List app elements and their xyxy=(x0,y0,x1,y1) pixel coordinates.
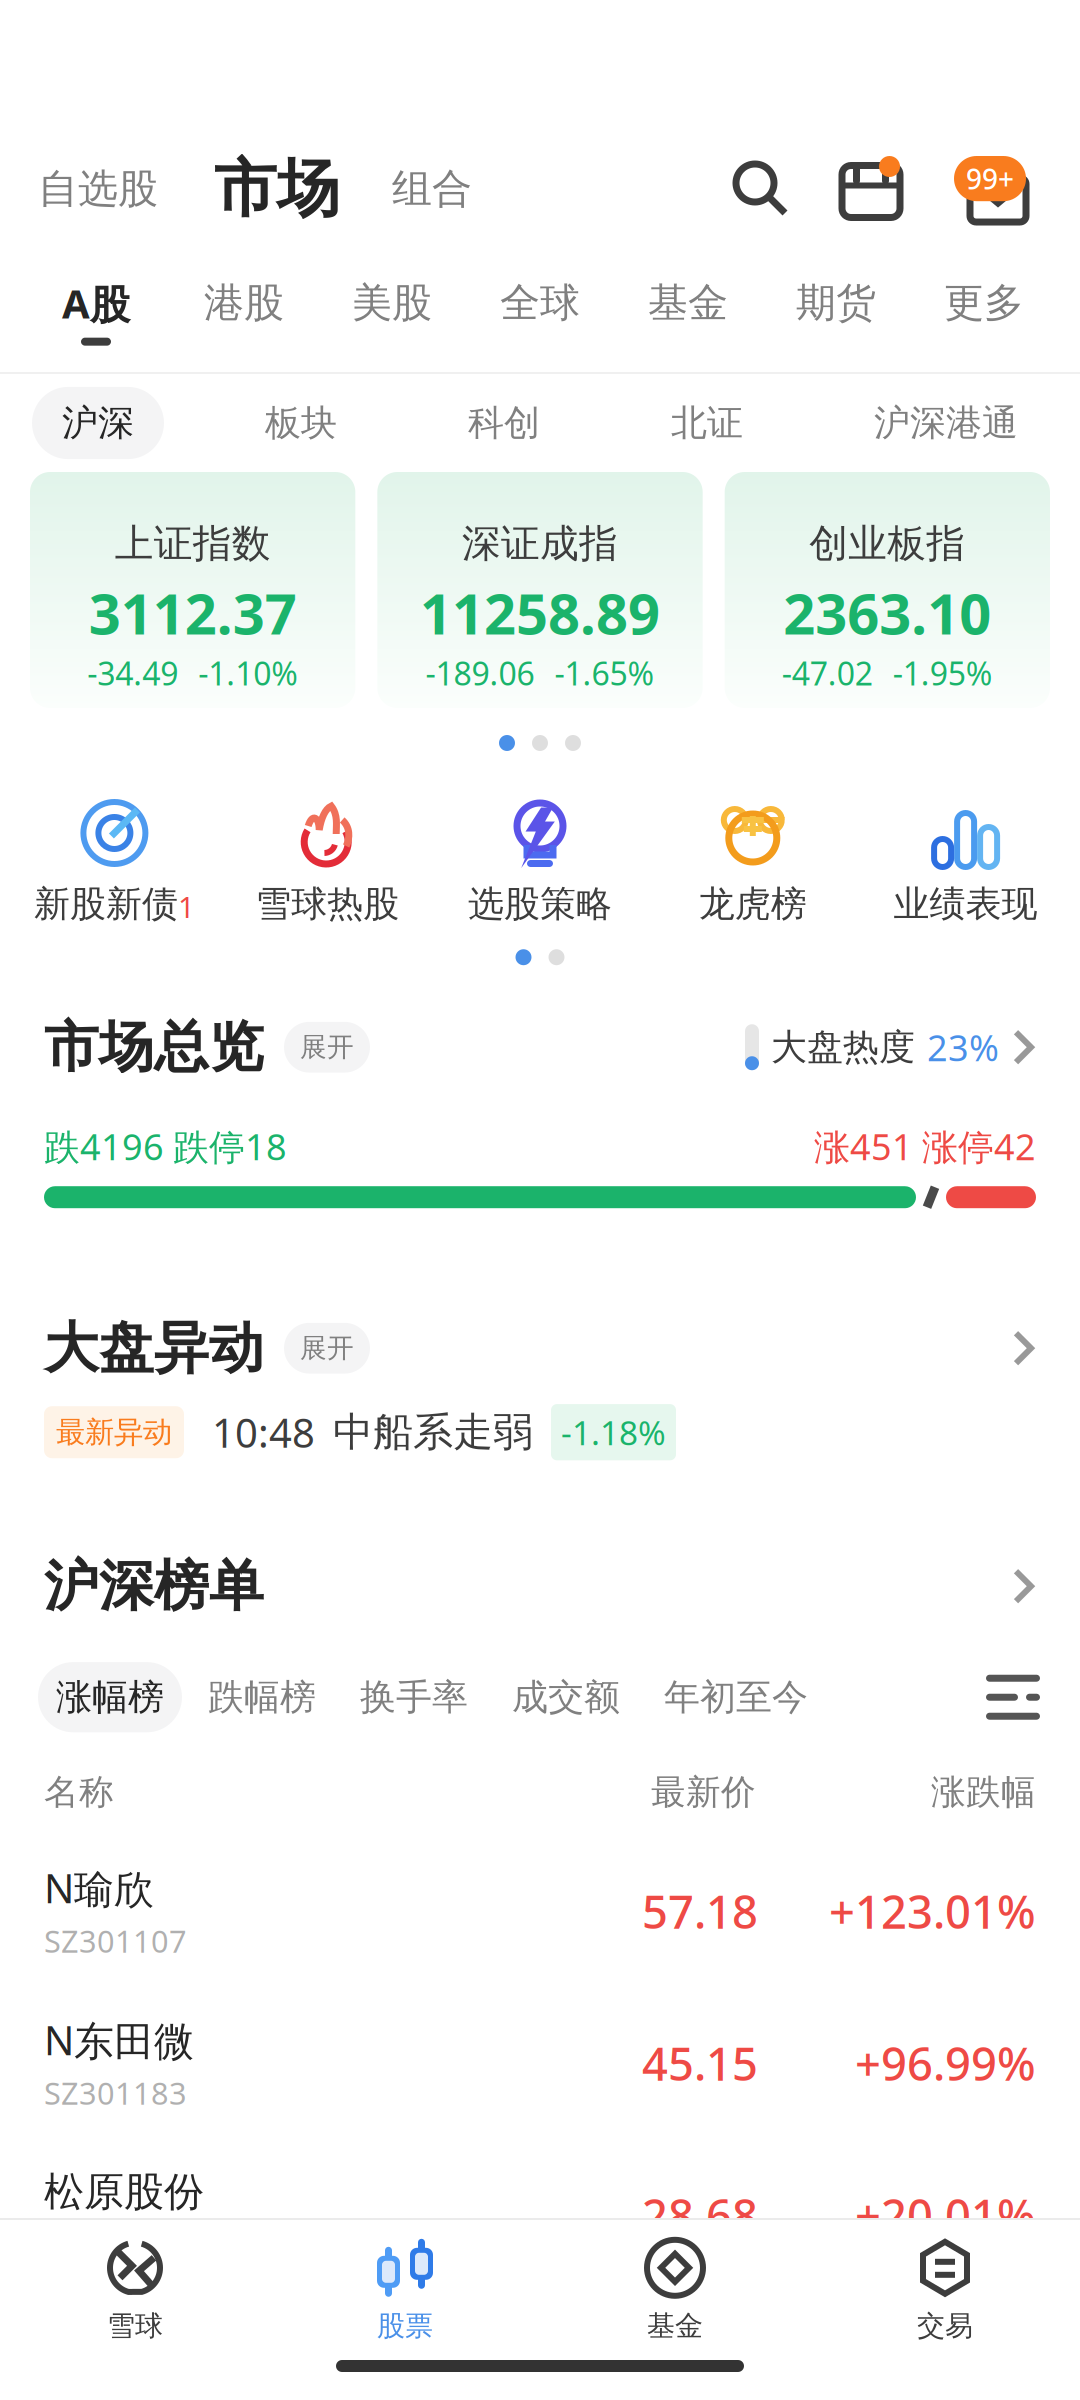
button[interactable]: 消息 xyxy=(954,156,1042,222)
staticText: 名称 xyxy=(44,1771,114,1813)
staticText: 最新异动 xyxy=(56,1414,172,1450)
staticText: 10:48 xyxy=(212,1406,315,1459)
button[interactable]: 沪深 xyxy=(32,387,164,459)
staticText: 大盘热度 xyxy=(771,1025,915,1069)
staticText: 科创 xyxy=(468,401,540,445)
button[interactable]: 最新异动 xyxy=(0,1383,1080,1527)
button[interactable]: 深证成指 xyxy=(377,472,703,708)
staticText: 全球 xyxy=(500,278,580,327)
staticText: 换手率 xyxy=(360,1675,468,1719)
button[interactable]: 科创 xyxy=(438,387,570,459)
button[interactable]: 搜索 xyxy=(732,160,790,218)
staticText: 基金 xyxy=(647,2309,703,2343)
button[interactable]: N东田微 xyxy=(0,1987,1080,2139)
button[interactable]: 上证指数 xyxy=(30,472,355,708)
button[interactable]: 新股新债 xyxy=(8,800,221,926)
staticText: 选股策略 xyxy=(468,882,612,926)
staticText: 大盘异动 xyxy=(44,1315,264,1382)
button[interactable]: 沪深榜单 xyxy=(44,1553,264,1620)
staticText: 沪深 xyxy=(62,401,134,445)
staticText: +20.01% xyxy=(855,2185,1036,2245)
staticText: 3112.37 xyxy=(89,575,297,650)
button[interactable]: 组合 xyxy=(392,164,472,213)
button[interactable]: 跌幅榜 xyxy=(190,1662,334,1732)
button[interactable]: 板块 xyxy=(235,387,367,459)
staticText: 2363.10 xyxy=(783,575,991,650)
button[interactable]: 大盘热度 xyxy=(745,1023,1036,1071)
staticText: 市场 xyxy=(214,150,340,227)
button[interactable]: 自选股 xyxy=(38,164,158,213)
staticText: SZ301107 xyxy=(44,1920,187,1961)
button[interactable]: 创业板指 xyxy=(725,472,1050,708)
button[interactable]: 成交额 xyxy=(494,1662,638,1732)
staticText: 股票 xyxy=(377,2309,433,2343)
button[interactable]: 更多榜单 xyxy=(1011,1566,1036,1606)
button[interactable]: 日历 xyxy=(842,156,918,222)
staticText: 雪球热股 xyxy=(255,882,399,926)
button[interactable]: 期货 xyxy=(762,278,910,343)
button[interactable]: 全球 xyxy=(466,278,614,343)
staticText: 涨跌幅 xyxy=(931,1771,1036,1813)
staticText: N东田微 xyxy=(44,2013,194,2066)
staticText: 年初至今 xyxy=(664,1675,808,1719)
button[interactable]: 雪球热股 xyxy=(221,800,434,926)
staticText: SZ301183 xyxy=(44,2072,187,2113)
button[interactable]: 龙虎榜 xyxy=(646,800,859,926)
staticText: -1.10% xyxy=(198,652,298,694)
staticText: 深证成指 xyxy=(462,520,618,567)
button[interactable]: 市场总览 xyxy=(44,1014,370,1081)
staticText: 1 xyxy=(178,887,195,926)
staticText: 自选股 xyxy=(38,164,158,213)
button[interactable]: 大盘异动 xyxy=(44,1315,370,1382)
staticText: 交易 xyxy=(917,2309,973,2343)
staticText: 最新价 xyxy=(651,1771,756,1813)
staticText: 涨451 涨停42 xyxy=(814,1122,1036,1170)
staticText: 创业板指 xyxy=(809,520,965,567)
button[interactable]: 松原股份 xyxy=(0,2139,1080,2291)
button[interactable]: 交易 xyxy=(810,2237,1080,2343)
button[interactable]: 年初至今 xyxy=(646,1662,826,1732)
button[interactable]: 市场 xyxy=(214,150,340,227)
button[interactable]: 筛选 xyxy=(984,1671,1042,1723)
staticText: 99+ xyxy=(966,160,1014,197)
staticText: -1.65% xyxy=(554,652,654,694)
button[interactable]: N瑜欣 xyxy=(0,1835,1080,1987)
button[interactable]: A股 xyxy=(22,276,170,346)
staticText: -1.95% xyxy=(893,652,993,694)
button[interactable]: 换手率 xyxy=(342,1662,486,1732)
button[interactable]: 涨幅榜 xyxy=(38,1662,182,1732)
staticText: 期货 xyxy=(796,278,876,327)
staticText: 涨幅榜 xyxy=(56,1675,164,1719)
button[interactable]: 基金 xyxy=(614,278,762,343)
staticText: 23% xyxy=(927,1023,999,1071)
staticText: 57.18 xyxy=(642,1881,758,1941)
button[interactable]: 北证 xyxy=(641,387,773,459)
staticText: 美股 xyxy=(352,278,432,327)
button[interactable]: 业绩表现 xyxy=(859,800,1072,926)
button[interactable]: 沪深港通 xyxy=(844,387,1048,459)
staticText: 业绩表现 xyxy=(894,882,1038,926)
staticText: 45.15 xyxy=(642,2033,758,2093)
button[interactable]: 更多 xyxy=(910,278,1058,343)
staticText: 沪深榜单 xyxy=(44,1553,264,1620)
button[interactable]: 雪球 xyxy=(0,2237,270,2343)
staticText: 北证 xyxy=(671,401,743,445)
staticText: 中船系走弱 xyxy=(333,1408,533,1457)
staticText: SZ300893 xyxy=(44,2222,187,2263)
staticText: 28.68 xyxy=(642,2185,758,2245)
staticText: 市场总览 xyxy=(44,1014,264,1081)
button[interactable]: 基金 xyxy=(540,2237,810,2343)
staticText: -1.18% xyxy=(561,1410,666,1454)
button[interactable]: 港股 xyxy=(170,278,318,343)
button[interactable]: 选股策略 xyxy=(434,800,646,926)
staticText: -34.49 xyxy=(87,652,178,694)
staticText: 雪球 xyxy=(107,2309,163,2343)
staticText: 展开 xyxy=(300,1332,354,1365)
staticText: 新股新债 xyxy=(34,882,178,926)
button[interactable]: 美股 xyxy=(318,278,466,343)
staticText: 上证指数 xyxy=(115,520,271,567)
button[interactable]: 更多大盘异动 xyxy=(1011,1328,1036,1368)
button[interactable]: 股票 xyxy=(270,2237,540,2343)
staticText: 11258.89 xyxy=(420,575,660,650)
staticText: 更多 xyxy=(944,278,1024,327)
